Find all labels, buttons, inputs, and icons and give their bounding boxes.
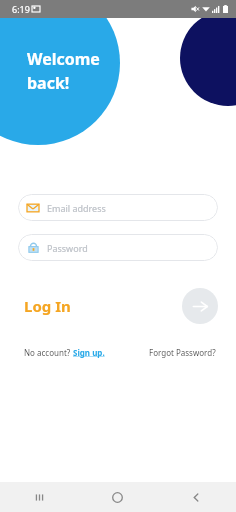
button[interactable]: Forgot Password? — [147, 344, 218, 361]
button[interactable]: Log In — [18, 292, 77, 320]
staticText: Sign up. — [73, 347, 105, 358]
button[interactable]: Back — [157, 482, 236, 512]
staticText: back! — [27, 72, 70, 94]
staticText: 6:19 — [12, 3, 30, 15]
staticText: No account? — [24, 347, 73, 358]
button[interactable]: Log in — [182, 288, 218, 324]
staticText: Email address — [47, 202, 106, 214]
staticText: Forgot Password? — [149, 347, 216, 358]
button[interactable]: Email address — [18, 194, 218, 221]
button[interactable]: Home — [78, 482, 157, 512]
button[interactable]: No account? — [24, 344, 105, 361]
button[interactable]: Password — [18, 234, 218, 261]
staticText: Log In — [24, 296, 71, 316]
button[interactable]: Recent apps — [0, 482, 78, 512]
staticText: Welcome — [27, 48, 100, 70]
staticText: Password — [47, 242, 88, 254]
